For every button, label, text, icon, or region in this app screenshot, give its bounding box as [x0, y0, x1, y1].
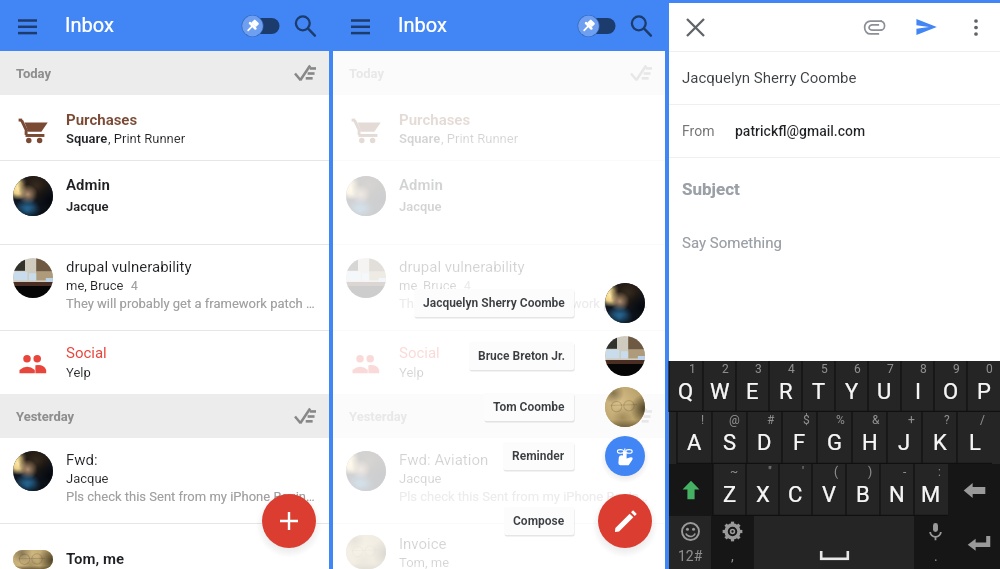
- button[interactable]: %: [817, 412, 852, 464]
- button[interactable]: ?: [922, 412, 957, 464]
- button[interactable]: Jacquelyn Sherry Coombe: [414, 282, 652, 324]
- button[interactable]: Fwd:: [0, 438, 329, 523]
- button[interactable]: Tom, me: [0, 524, 329, 569]
- button[interactable]: Admin: [0, 161, 329, 244]
- button[interactable]: -: [880, 464, 914, 516]
- button[interactable]: Send: [904, 5, 948, 49]
- button[interactable]: 0: [967, 361, 1000, 412]
- staticText: , Print Runner: [108, 131, 186, 146]
- button[interactable]: Reminder: [605, 436, 645, 476]
- button[interactable]: Voice input: [914, 516, 957, 569]
- staticText: !: [701, 413, 705, 427]
- button[interactable]: ': [779, 464, 812, 516]
- button[interactable]: Social: [333, 331, 665, 394]
- button[interactable]: Purchases: [333, 95, 665, 160]
- staticText: Jacquelyn Sherry Coombe: [682, 69, 857, 87]
- staticText: B: [856, 482, 870, 508]
- staticText: ?: [944, 413, 950, 427]
- button[interactable]: Menu: [338, 4, 382, 48]
- staticText: ): [868, 465, 873, 479]
- button[interactable]: Close: [673, 5, 717, 49]
- button[interactable]: 8: [901, 361, 934, 412]
- button[interactable]: Pin toggle: [235, 4, 283, 48]
- staticText: 9: [953, 362, 960, 376]
- staticText: patrickfl@gmail.com: [735, 123, 866, 139]
- staticText: L: [969, 430, 981, 456]
- button[interactable]: Enter: [957, 516, 1000, 569]
- button[interactable]: 3: [736, 361, 769, 412]
- button[interactable]: Compose: [598, 494, 652, 548]
- button[interactable]: 9: [934, 361, 967, 412]
- staticText: O: [943, 379, 959, 405]
- button[interactable]: (: [812, 464, 846, 516]
- button[interactable]: 4: [769, 361, 802, 412]
- button[interactable]: Search: [283, 4, 327, 48]
- button[interactable]: 1: [669, 361, 703, 412]
- button[interactable]: Mark all done: [625, 57, 657, 89]
- button[interactable]: Subject: [669, 158, 1000, 220]
- button[interactable]: Emoji keyboard: [669, 516, 711, 569]
- button[interactable]: Fwd: Aviation: [333, 438, 665, 523]
- button[interactable]: Menu: [5, 4, 49, 48]
- button[interactable]: drupal vulnerability: [0, 245, 329, 330]
- button[interactable]: +: [887, 412, 922, 464]
- staticText: , Print Runner: [441, 131, 519, 146]
- button[interactable]: Bruce Breton Jr.: [469, 335, 652, 377]
- staticText: I: [915, 379, 921, 405]
- button[interactable]: Social: [0, 331, 329, 394]
- staticText: Social: [399, 344, 440, 362]
- button[interactable]: Space: [754, 516, 914, 569]
- button[interactable]: Language: [669, 412, 677, 464]
- button[interactable]: 7: [868, 361, 901, 412]
- button[interactable]: Admin: [333, 161, 665, 244]
- button[interactable]: Jacquelyn Sherry Coombe: [669, 52, 1000, 104]
- button[interactable]: Attach file: [852, 5, 896, 49]
- button[interactable]: drupal vulnerability: [333, 245, 665, 330]
- staticText: .: [934, 548, 938, 564]
- button[interactable]: Say Something: [669, 220, 1000, 266]
- button[interactable]: #: [747, 412, 782, 464]
- staticText: S: [723, 430, 737, 456]
- staticText: G: [827, 430, 842, 456]
- button[interactable]: !: [677, 412, 712, 464]
- button[interactable]: 6: [835, 361, 868, 412]
- staticText: %: [836, 413, 845, 427]
- button[interactable]: Search: [619, 4, 663, 48]
- staticText: R: [779, 379, 793, 405]
- button[interactable]: 5: [802, 361, 835, 412]
- button[interactable]: Backspace: [948, 464, 1000, 516]
- staticText: 3: [755, 362, 762, 376]
- button[interactable]: $: [782, 412, 817, 464]
- button[interactable]: Mark all done: [625, 400, 657, 432]
- button[interactable]: Compose: [504, 494, 652, 548]
- button[interactable]: :: [914, 464, 948, 516]
- button[interactable]: ": [746, 464, 779, 516]
- button[interactable]: ~: [713, 464, 746, 516]
- button[interactable]: ): [846, 464, 880, 516]
- button[interactable]: Mark all done: [289, 400, 321, 432]
- button[interactable]: More options: [956, 7, 996, 47]
- button[interactable]: Pin toggle: [571, 4, 619, 48]
- button[interactable]: Mark all done: [289, 57, 321, 89]
- button[interactable]: Tom Coombe: [484, 386, 652, 428]
- button[interactable]: Shift: [669, 464, 713, 516]
- staticText: Square: [66, 131, 108, 146]
- button[interactable]: Compose: [262, 494, 316, 548]
- button[interactable]: Invoice: [333, 524, 665, 569]
- staticText: 5: [821, 362, 828, 376]
- staticText: Y: [845, 379, 859, 405]
- button[interactable]: From: [669, 105, 1000, 157]
- button[interactable]: Reminder: [503, 435, 652, 477]
- staticText: Compose: [513, 514, 565, 528]
- button[interactable]: Purchases: [0, 95, 329, 160]
- button[interactable]: @: [712, 412, 747, 464]
- button[interactable]: /: [957, 412, 992, 464]
- button[interactable]: &: [852, 412, 887, 464]
- staticText: N: [889, 482, 905, 508]
- staticText: @: [729, 413, 740, 427]
- button[interactable]: 2: [703, 361, 736, 412]
- staticText: Bruce Breton Jr.: [478, 349, 565, 363]
- staticText: Jacquelyn Sherry Coombe: [423, 296, 565, 310]
- staticText: A: [687, 430, 702, 456]
- button[interactable]: Keyboard settings: [711, 516, 754, 569]
